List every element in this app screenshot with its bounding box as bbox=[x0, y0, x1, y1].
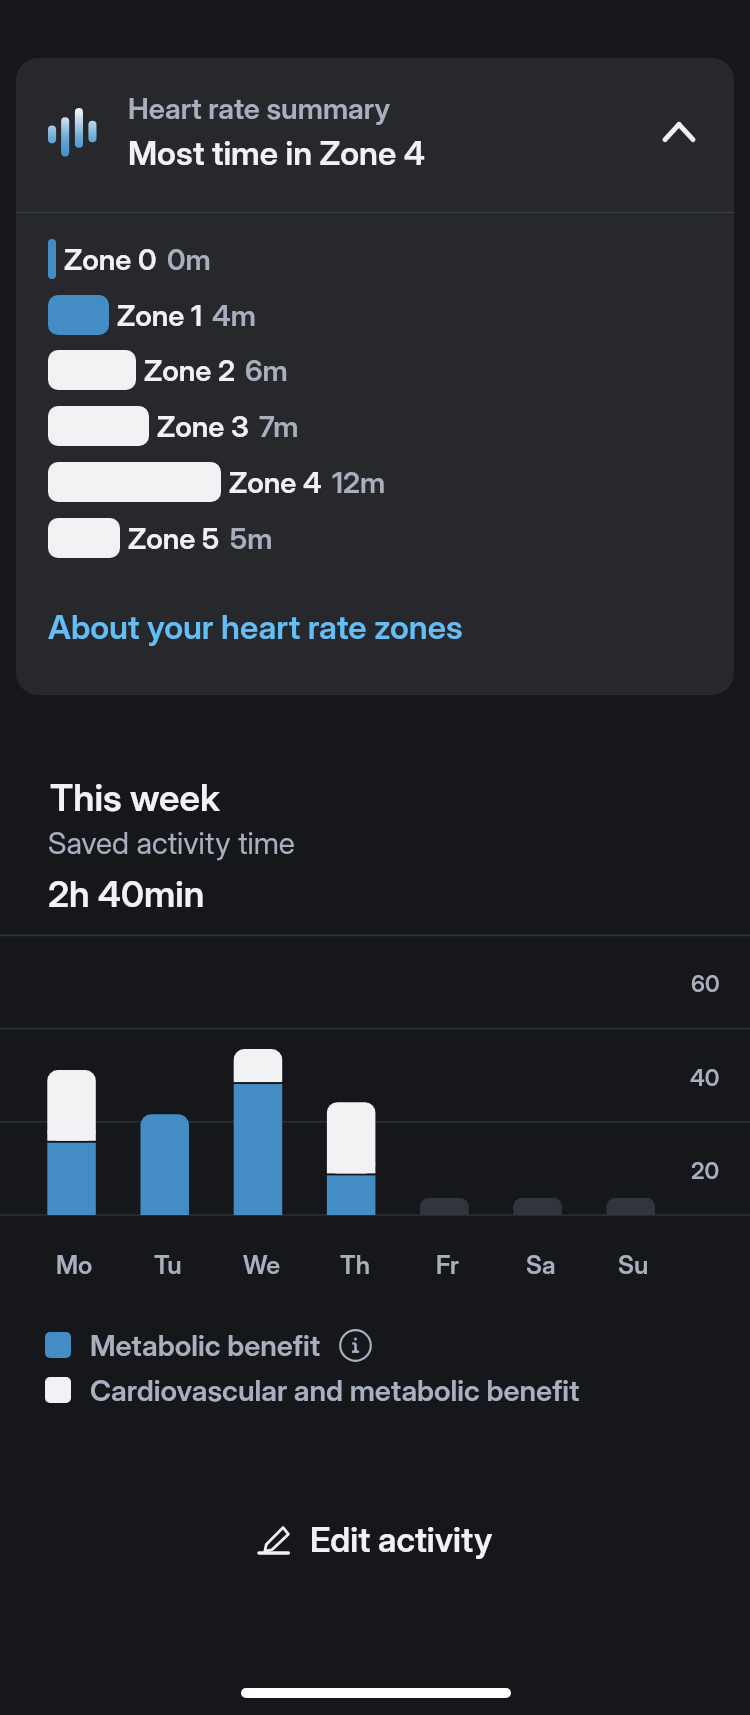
staticText: About your heart rate zones bbox=[48, 607, 463, 647]
staticText: 2h 40min bbox=[48, 872, 205, 916]
staticText: 60 bbox=[691, 970, 720, 998]
staticText: Heart rate summary bbox=[128, 91, 391, 126]
staticText: Zone 4 bbox=[229, 465, 322, 500]
staticText: Edit activity bbox=[310, 1519, 493, 1560]
staticText: Zone 5 bbox=[128, 521, 220, 556]
other: More information bbox=[338, 1328, 372, 1362]
staticText: We bbox=[243, 1250, 280, 1280]
staticText: 12m bbox=[332, 465, 386, 500]
staticText: 40 bbox=[690, 1064, 720, 1092]
staticText: Most time in Zone 4 bbox=[128, 133, 425, 173]
button[interactable]: Zone 4 bbox=[16, 454, 734, 510]
staticText: Zone 3 bbox=[157, 409, 249, 444]
staticText: Mo bbox=[56, 1250, 93, 1280]
staticText: Cardiovascular and metabolic benefit bbox=[90, 1373, 580, 1408]
staticText: 4m bbox=[212, 298, 256, 333]
staticText: 20 bbox=[691, 1157, 720, 1185]
button[interactable]: Zone 2 bbox=[16, 342, 734, 398]
button[interactable]: Zone 0 bbox=[16, 231, 734, 287]
button[interactable]: Collapse section bbox=[647, 100, 711, 164]
staticText: Zone 1 bbox=[117, 298, 202, 333]
staticText: Metabolic benefit bbox=[90, 1328, 321, 1363]
staticText: Sa bbox=[526, 1250, 556, 1280]
staticText: Su bbox=[618, 1250, 649, 1280]
staticText: Saved activity time bbox=[48, 825, 295, 861]
staticText: Th bbox=[340, 1250, 370, 1280]
staticText: 6m bbox=[245, 353, 288, 388]
staticText: 0m bbox=[167, 242, 211, 277]
staticText: 5m bbox=[230, 521, 273, 556]
button[interactable]: Zone 3 bbox=[16, 398, 734, 454]
button[interactable]: About your heart rate zones bbox=[36, 597, 475, 657]
staticText: Zone 0 bbox=[64, 242, 157, 277]
button[interactable]: Zone 1 bbox=[16, 287, 734, 343]
button[interactable]: Edit activity bbox=[0, 1507, 750, 1571]
staticText: This week bbox=[50, 775, 220, 820]
staticText: 7m bbox=[259, 409, 299, 444]
button[interactable]: Metabolic benefit bbox=[45, 1327, 372, 1363]
button[interactable]: Cardiovascular and metabolic benefit bbox=[45, 1372, 580, 1408]
button[interactable]: Heart rate summary bbox=[16, 58, 734, 212]
staticText: Zone 2 bbox=[144, 353, 235, 388]
button[interactable]: Zone 5 bbox=[16, 510, 734, 566]
staticText: Tu bbox=[154, 1250, 182, 1280]
staticText: Fr bbox=[436, 1250, 459, 1280]
